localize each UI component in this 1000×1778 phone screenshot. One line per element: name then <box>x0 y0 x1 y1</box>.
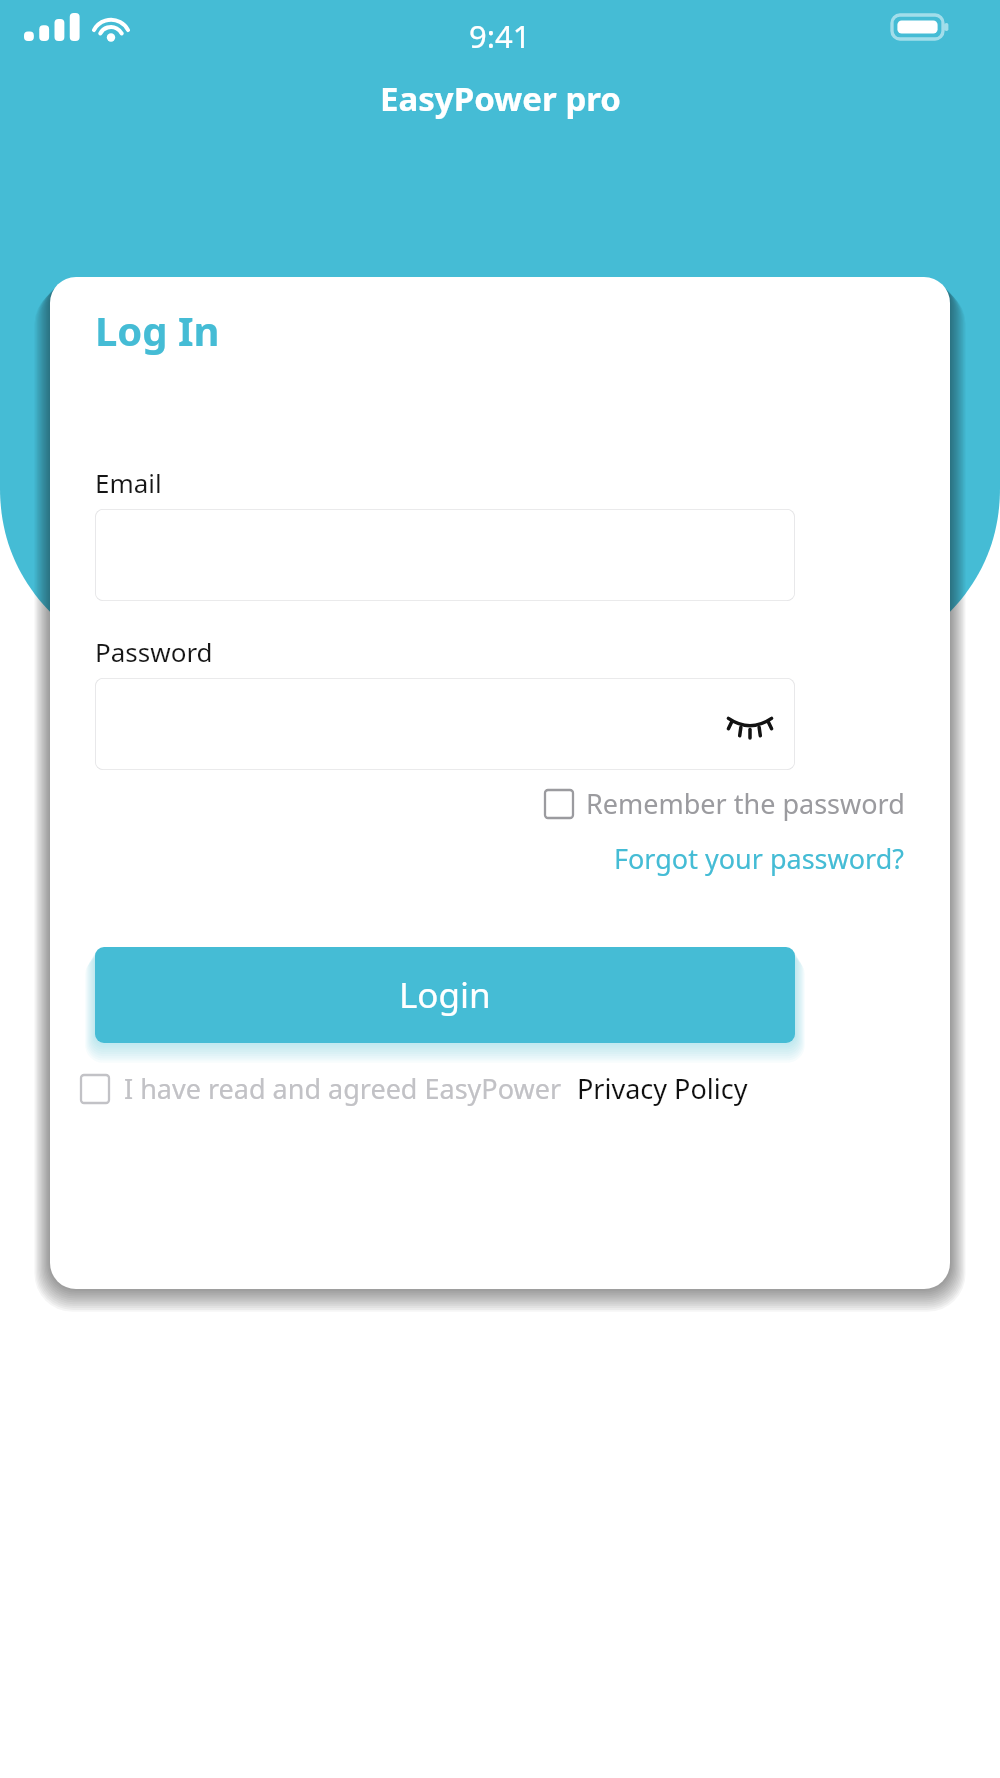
button[interactable]: Show password <box>95 678 795 770</box>
staticText: 9:41 <box>469 15 531 57</box>
staticText: EasyPower pro <box>380 76 621 121</box>
button[interactable] <box>95 509 795 601</box>
staticText: Remember the password <box>586 785 905 822</box>
button[interactable]: I have read and agreed EasyPower <box>81 1070 748 1107</box>
staticText: Log In <box>95 303 220 357</box>
button[interactable]: Remember the password <box>545 785 905 822</box>
button[interactable]: Show password <box>721 695 779 753</box>
staticText: Password <box>95 634 213 669</box>
staticText: Login <box>399 971 491 1019</box>
staticText: Privacy Policy <box>577 1070 748 1107</box>
button[interactable]: Forgot your password? <box>614 840 905 877</box>
button[interactable]: Login <box>95 947 795 1043</box>
staticText: Email <box>95 465 162 500</box>
staticText: I have read and agreed EasyPower <box>124 1070 562 1107</box>
staticText: Forgot your password? <box>614 840 905 877</box>
